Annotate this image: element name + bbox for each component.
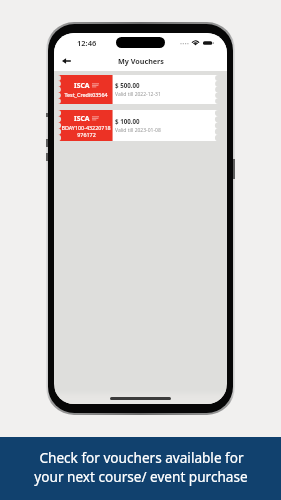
staticText: your next course/ event purchase (34, 467, 248, 486)
staticText: ISCA (74, 114, 90, 123)
staticText: $ 100.00 (115, 117, 140, 125)
staticText: 12:46 (77, 38, 97, 48)
button[interactable]: ISCA (58, 75, 218, 104)
button[interactable]: ISCA (58, 110, 218, 141)
staticText: BDAY100-43220718 (61, 124, 111, 131)
staticText: My Vouchers (118, 56, 164, 66)
staticText: Test_Credit03564 (64, 91, 108, 98)
staticText: Valid till 2023-01-08 (115, 127, 161, 134)
staticText: Check for vouchers available for (39, 448, 244, 467)
button[interactable]: Back (58, 53, 74, 69)
staticText: Valid till 2022-12-31 (115, 91, 161, 98)
staticText: 976172 (77, 131, 96, 138)
staticText: $ 500.00 (115, 81, 140, 89)
staticText: ISCA (74, 81, 90, 90)
